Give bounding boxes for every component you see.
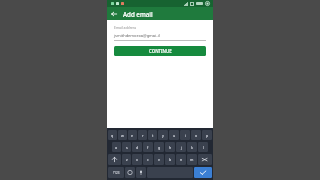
button[interactable]: p: [202, 130, 212, 140]
staticText: z: [126, 157, 128, 162]
staticText: jsmithdemoexa@gmai..il: [114, 33, 161, 38]
button[interactable]: h: [165, 142, 175, 152]
button[interactable]: Emoji: [125, 167, 135, 178]
button[interactable]: n: [176, 154, 186, 165]
staticText: q: [111, 133, 114, 138]
staticText: CONTINUE: [149, 48, 172, 54]
staticText: l: [203, 145, 204, 150]
button[interactable]: o: [191, 130, 201, 140]
button[interactable]: Back: [107, 7, 120, 20]
button[interactable]: b: [165, 154, 175, 165]
staticText: o: [195, 133, 198, 138]
staticText: j: [181, 145, 182, 150]
staticText: Add email: [123, 10, 153, 18]
button[interactable]: Voice input: [136, 167, 146, 178]
staticText: y: [162, 133, 164, 138]
button[interactable]: l: [198, 142, 208, 152]
staticText: h: [169, 145, 172, 150]
staticText: k: [191, 145, 193, 150]
button[interactable]: g: [154, 142, 164, 152]
staticText: t: [152, 133, 154, 138]
button[interactable]: Enter: [194, 167, 212, 178]
staticText: r: [142, 133, 144, 138]
button[interactable]: j: [176, 142, 186, 152]
staticText: m: [190, 157, 194, 162]
button[interactable]: a: [112, 142, 121, 152]
button[interactable]: s: [122, 142, 131, 152]
button[interactable]: m: [187, 154, 197, 165]
button[interactable]: u: [169, 130, 179, 140]
staticText: n: [180, 157, 183, 162]
button[interactable]: e: [128, 130, 137, 140]
staticText: v: [158, 157, 160, 162]
button[interactable]: f: [143, 142, 153, 152]
button[interactable]: t: [148, 130, 157, 140]
staticText: d: [136, 145, 139, 150]
button[interactable]: r: [138, 130, 147, 140]
staticText: ?123: [113, 171, 120, 175]
staticText: f: [147, 145, 149, 150]
button[interactable]: CONTINUE: [114, 46, 206, 56]
button[interactable]: Delete: [198, 154, 212, 165]
staticText: x: [136, 157, 138, 162]
staticText: Email address: [114, 25, 137, 30]
staticText: e: [131, 133, 134, 138]
staticText: c: [147, 157, 149, 162]
button[interactable]: v: [154, 154, 164, 165]
button[interactable]: w: [118, 130, 127, 140]
button[interactable]: c: [143, 154, 153, 165]
button[interactable]: ?123: [108, 167, 124, 178]
button[interactable]: i: [180, 130, 190, 140]
staticText: u: [173, 133, 176, 138]
button[interactable]: q: [108, 130, 117, 140]
button[interactable]: Shift: [108, 154, 121, 165]
staticText: i: [185, 133, 186, 138]
button[interactable]: k: [187, 142, 197, 152]
staticText: s: [126, 145, 128, 150]
staticText: p: [206, 133, 209, 138]
button[interactable]: z: [122, 154, 131, 165]
staticText: b: [169, 157, 172, 162]
button[interactable]: x: [132, 154, 142, 165]
staticText: a: [115, 145, 118, 150]
button[interactable]: d: [132, 142, 142, 152]
staticText: g: [158, 145, 161, 150]
button[interactable]: y: [158, 130, 168, 140]
staticText: w: [121, 133, 124, 138]
